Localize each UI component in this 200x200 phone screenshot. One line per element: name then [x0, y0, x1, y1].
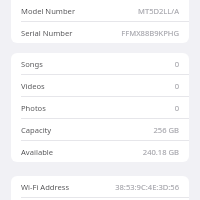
staticText: 0: [174, 81, 179, 91]
button[interactable]: Videos: [11, 75, 189, 96]
staticText: 256 GB: [153, 125, 179, 135]
staticText: FFMX88B9KPHG: [121, 28, 179, 38]
staticText: Videos: [21, 81, 45, 91]
button[interactable]: Photos: [11, 97, 189, 118]
staticText: Songs: [21, 59, 43, 69]
staticText: 38:53:9C:4E:3D:56: [115, 182, 179, 192]
staticText: MT5D2LL/A: [138, 6, 179, 16]
button[interactable]: Wi-Fi Address: [11, 176, 189, 197]
staticText: Wi-Fi Address: [21, 182, 70, 192]
staticText: Available: [21, 147, 54, 157]
staticText: Capacity: [21, 125, 52, 135]
button[interactable]: Available: [11, 141, 189, 162]
button[interactable]: Serial Number: [11, 22, 189, 43]
staticText: Serial Number: [21, 28, 73, 38]
staticText: 0: [174, 103, 179, 113]
staticText: 240.18 GB: [142, 147, 179, 157]
staticText: Model Number: [21, 6, 76, 16]
staticText: Photos: [21, 103, 46, 113]
staticText: 0: [174, 59, 179, 69]
button[interactable]: Model Number: [11, 0, 189, 21]
button[interactable]: Capacity: [11, 119, 189, 140]
button[interactable]: Songs: [11, 53, 189, 74]
